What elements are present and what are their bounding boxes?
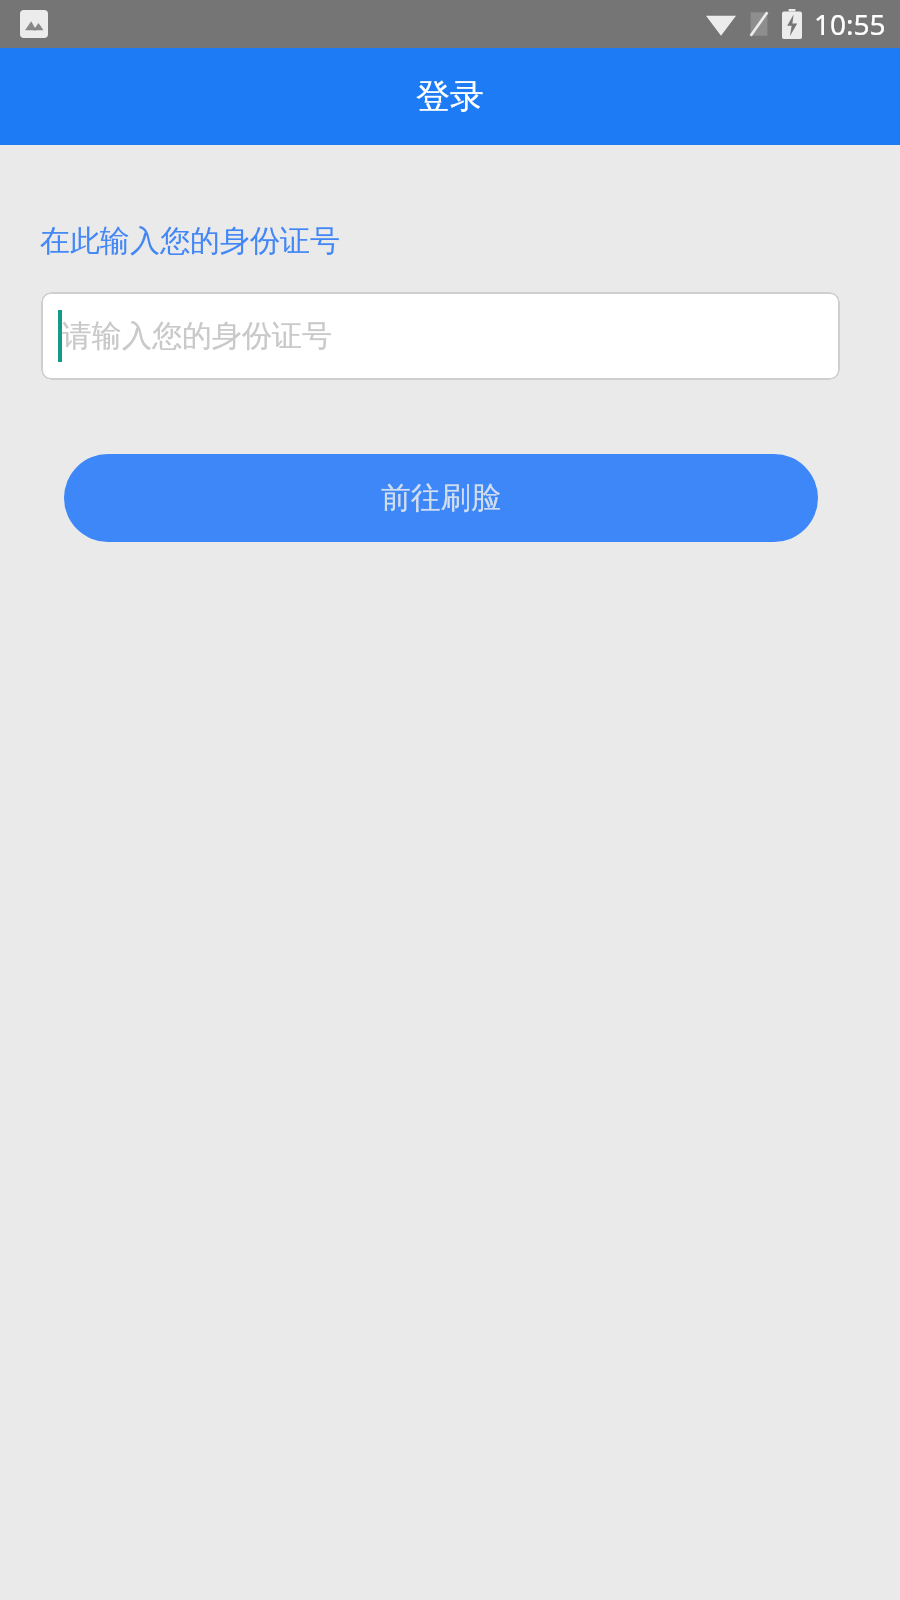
button[interactable]: 请输入您的身份证号 bbox=[41, 292, 840, 380]
staticText: 10:55 bbox=[814, 5, 886, 43]
button[interactable]: 前往刷脸 bbox=[64, 454, 818, 542]
staticText: 请输入您的身份证号 bbox=[62, 317, 332, 355]
staticText: 前往刷脸 bbox=[381, 479, 501, 517]
staticText: 登录 bbox=[416, 75, 484, 118]
staticText: 在此输入您的身份证号 bbox=[40, 222, 340, 260]
